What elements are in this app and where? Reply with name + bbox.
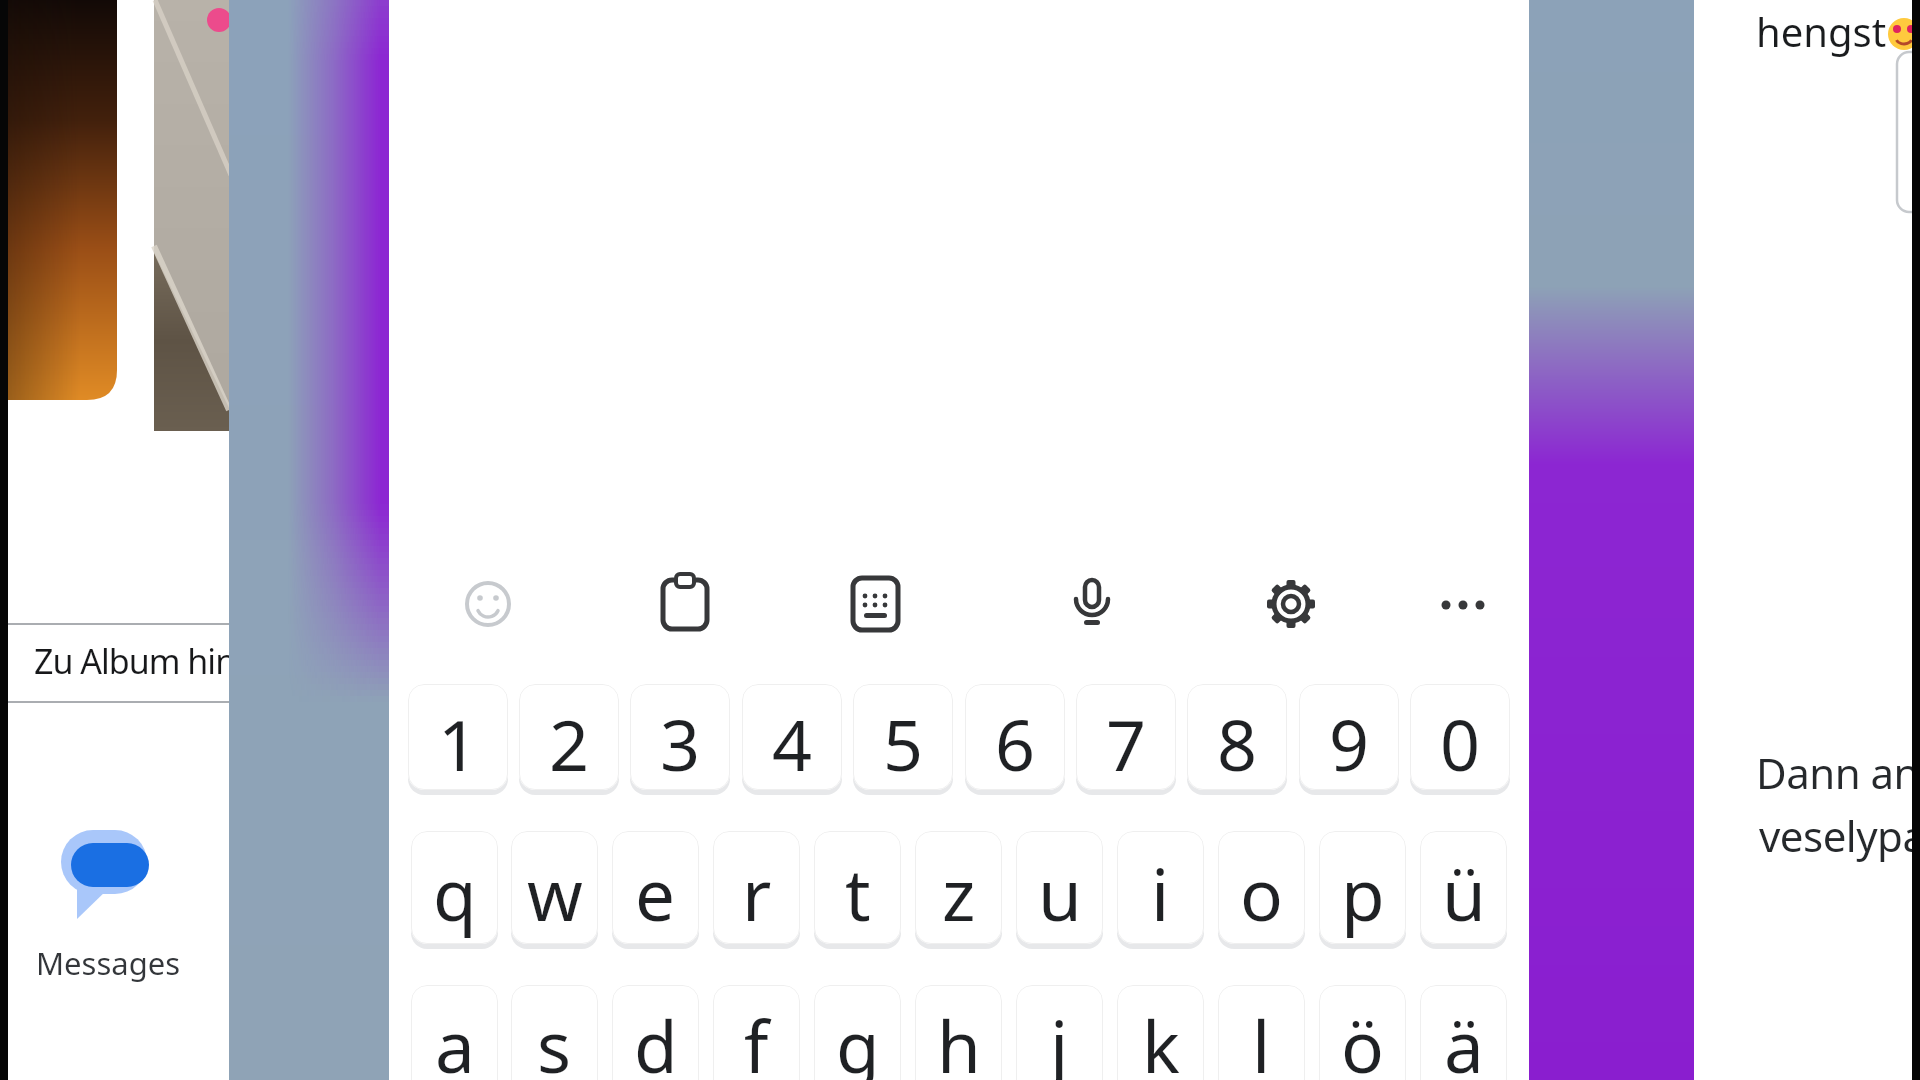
button[interactable] <box>1435 576 1491 632</box>
button[interactable]: r <box>713 831 800 944</box>
staticText: i <box>1151 845 1170 942</box>
staticText: s <box>537 997 572 1080</box>
staticText: k <box>1142 997 1180 1080</box>
staticText: Messages <box>36 942 181 984</box>
staticText: 1 <box>438 696 479 790</box>
staticText: q <box>433 845 477 942</box>
staticText: 3 <box>660 696 701 790</box>
staticText: o <box>1240 845 1283 942</box>
button[interactable]: d <box>612 985 699 1080</box>
staticText: p <box>1341 845 1385 942</box>
staticText: Dann an <box>1756 744 1920 801</box>
button[interactable]: ä <box>1420 985 1507 1080</box>
staticText: d <box>634 997 678 1080</box>
button[interactable]: w <box>511 831 598 944</box>
button[interactable]: 0 <box>1410 684 1510 790</box>
button[interactable]: 3 <box>630 684 730 790</box>
staticText: Zu Album hinzufügen <box>34 638 229 684</box>
button[interactable]: ü <box>1420 831 1507 944</box>
button[interactable] <box>8 625 229 701</box>
button[interactable] <box>1064 576 1120 632</box>
staticText: 0 <box>1440 696 1481 790</box>
button[interactable]: 8 <box>1187 684 1287 790</box>
staticText: 7 <box>1106 696 1147 790</box>
staticText: r <box>742 845 772 942</box>
button[interactable]: l <box>1218 985 1305 1080</box>
button[interactable]: 4 <box>742 684 842 790</box>
staticText: ü <box>1442 845 1486 942</box>
button[interactable] <box>847 576 903 632</box>
button[interactable]: 5 <box>853 684 953 790</box>
button[interactable] <box>460 576 516 632</box>
button[interactable]: p <box>1319 831 1406 944</box>
staticText: 6 <box>995 696 1036 790</box>
button[interactable]: k <box>1117 985 1204 1080</box>
staticText: 4 <box>772 696 813 790</box>
staticText: a <box>435 997 475 1080</box>
button[interactable]: f <box>713 985 800 1080</box>
button[interactable]: ö <box>1319 985 1406 1080</box>
staticText: g <box>836 997 880 1080</box>
staticText: f <box>744 997 769 1080</box>
button[interactable]: 1 <box>408 684 508 790</box>
staticText: w <box>527 845 583 942</box>
button[interactable]: 7 <box>1076 684 1176 790</box>
staticText: ö <box>1341 997 1384 1080</box>
button[interactable]: Messages <box>36 942 181 984</box>
button[interactable] <box>1263 576 1319 632</box>
staticText: 9 <box>1329 696 1370 790</box>
staticText: u <box>1038 845 1082 942</box>
button[interactable]: g <box>814 985 901 1080</box>
button[interactable] <box>657 576 713 632</box>
button[interactable]: u <box>1016 831 1103 944</box>
button[interactable]: i <box>1117 831 1204 944</box>
button[interactable]: q <box>411 831 498 944</box>
staticText: z <box>942 845 976 942</box>
staticText: 2 <box>549 696 590 790</box>
staticText: ä <box>1444 997 1484 1080</box>
staticText: e <box>635 845 676 942</box>
staticText: j <box>1050 997 1069 1080</box>
button[interactable] <box>55 822 155 922</box>
button[interactable]: z <box>915 831 1002 944</box>
staticText: veselypar <box>1759 807 1920 864</box>
staticText: h <box>937 997 981 1080</box>
staticText: t <box>845 845 871 942</box>
button[interactable]: h <box>915 985 1002 1080</box>
button[interactable]: o <box>1218 831 1305 944</box>
staticText: 8 <box>1217 696 1258 790</box>
button[interactable]: 9 <box>1299 684 1399 790</box>
button[interactable]: j <box>1016 985 1103 1080</box>
button[interactable]: t <box>814 831 901 944</box>
button[interactable]: a <box>411 985 498 1080</box>
staticText: l <box>1252 997 1271 1080</box>
button[interactable]: 6 <box>965 684 1065 790</box>
staticText: 5 <box>883 696 924 790</box>
button[interactable]: e <box>612 831 699 944</box>
button[interactable]: s <box>511 985 598 1080</box>
button[interactable]: 2 <box>519 684 619 790</box>
staticText: hengst <box>1756 4 1887 58</box>
